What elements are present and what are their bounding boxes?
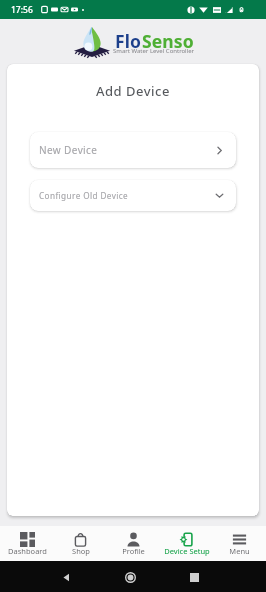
- staticText: Device Setup: [164, 546, 210, 556]
- button[interactable]: Profile: [107, 526, 160, 561]
- button[interactable]: Home: [117, 564, 143, 590]
- staticText: Smart Water Level Controller: [113, 47, 195, 55]
- staticText: Dashboard: [8, 546, 47, 556]
- button[interactable]: Dashboard: [0, 526, 54, 561]
- button[interactable]: Configure Old Device: [30, 180, 236, 211]
- button[interactable]: Shop: [54, 526, 107, 561]
- staticText: Add Device: [7, 82, 259, 100]
- staticText: New Device: [39, 143, 98, 157]
- button[interactable]: Recents: [181, 564, 207, 590]
- staticText: Flo: [115, 29, 142, 53]
- staticText: Senso: [142, 29, 194, 53]
- button[interactable]: Device Setup: [160, 526, 213, 561]
- staticText: Configure Old Device: [39, 190, 129, 201]
- button[interactable]: Back: [53, 564, 79, 590]
- button[interactable]: New Device: [30, 132, 236, 168]
- staticText: Shop: [72, 546, 90, 556]
- staticText: Profile: [122, 546, 145, 556]
- button[interactable]: Menu: [213, 526, 266, 561]
- staticText: 17:56: [11, 4, 33, 16]
- staticText: Menu: [229, 546, 250, 556]
